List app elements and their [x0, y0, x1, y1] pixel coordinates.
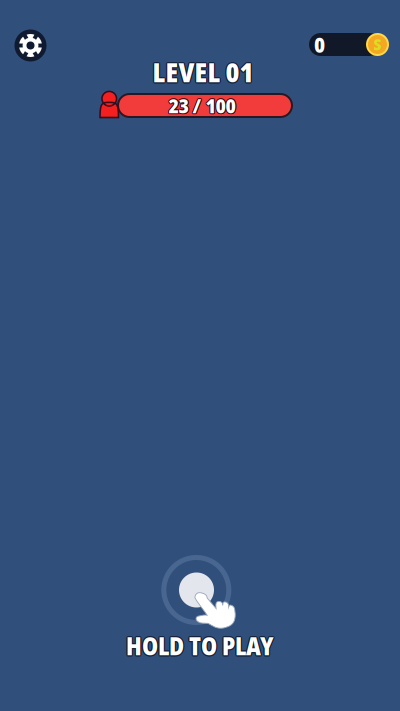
staticText: HOLD TO PLAY: [126, 631, 274, 664]
staticText: HOLD TO PLAY: [125, 629, 273, 661]
staticText: 23 / 100: [168, 93, 235, 120]
staticText: S: [373, 33, 381, 55]
staticText: LEVEL 01: [154, 54, 255, 90]
staticText: LEVEL 01: [152, 54, 253, 90]
staticText: 0: [314, 30, 325, 59]
staticText: 23 / 100: [168, 91, 235, 118]
staticText: HOLD TO PLAY: [125, 630, 273, 663]
button[interactable]: Settings: [14, 29, 46, 61]
staticText: 23 / 100: [168, 92, 235, 119]
button[interactable]: HOLD TO PLAY: [90, 633, 310, 659]
staticText: 23 / 100: [170, 92, 237, 119]
staticText: LEVEL 01: [152, 53, 253, 89]
staticText: HOLD TO PLAY: [125, 630, 273, 662]
staticText: LEVEL 01: [152, 55, 253, 91]
staticText: 23 / 100: [167, 92, 234, 119]
staticText: LEVEL 01: [153, 53, 254, 89]
staticText: LEVEL 01: [152, 53, 253, 89]
staticText: 23 / 100: [169, 91, 236, 118]
staticText: LEVEL 01: [152, 55, 253, 91]
staticText: HOLD TO PLAY: [127, 630, 275, 663]
staticText: HOLD TO PLAY: [126, 630, 274, 662]
staticText: 23 / 100: [168, 91, 235, 118]
staticText: 23 / 100: [168, 93, 235, 120]
staticText: 23 / 100: [169, 93, 236, 120]
staticText: HOLD TO PLAY: [126, 628, 274, 661]
staticText: LEVEL 01: [151, 54, 252, 90]
button[interactable]: Coins: 0: [309, 33, 389, 56]
staticText: HOLD TO PLAY: [127, 630, 275, 662]
staticText: HOLD TO PLAY: [127, 629, 275, 661]
staticText: LEVEL 01: [153, 55, 254, 91]
